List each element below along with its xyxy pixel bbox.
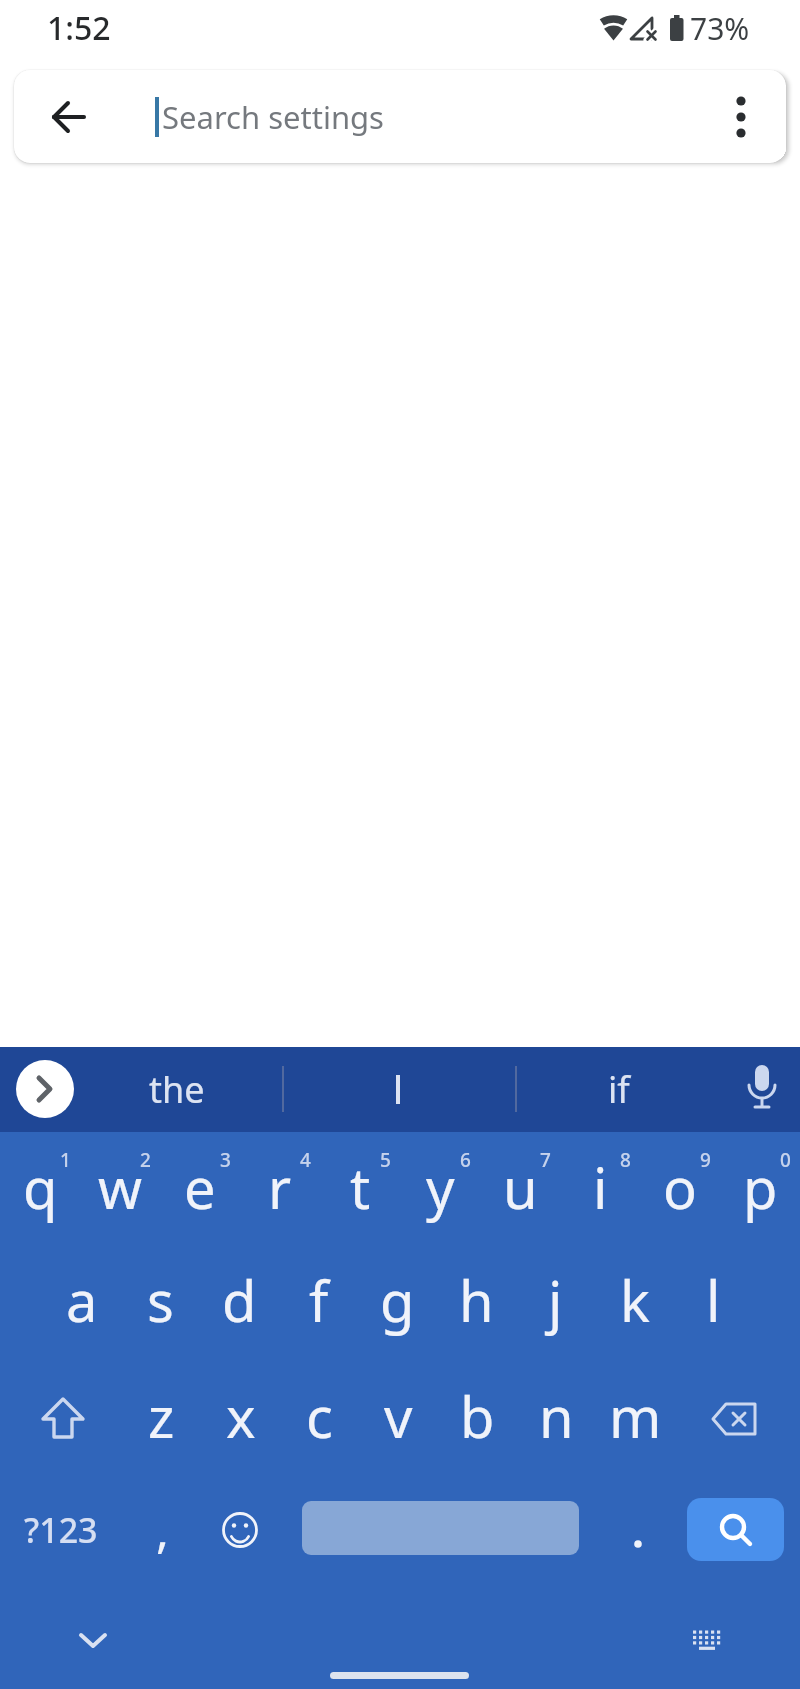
staticText: x [226, 1378, 256, 1454]
button[interactable]: k [595, 1242, 674, 1358]
button[interactable]: o [640, 1129, 720, 1245]
staticText: o [663, 1149, 697, 1225]
button[interactable] [715, 91, 767, 143]
staticText: 8 [620, 1147, 631, 1173]
button[interactable]: m [596, 1358, 675, 1474]
staticText: u [503, 1149, 538, 1225]
button[interactable] [302, 1501, 579, 1555]
button[interactable]: if [539, 1049, 699, 1129]
button[interactable]: q [0, 1129, 80, 1245]
staticText: 0 [780, 1147, 791, 1173]
button[interactable] [202, 1492, 278, 1568]
button[interactable]: g [358, 1242, 437, 1358]
staticText: v [384, 1378, 413, 1454]
staticText: 7 [540, 1147, 551, 1173]
button[interactable]: h [437, 1242, 516, 1358]
staticText: z [148, 1378, 175, 1454]
staticText: 1 [60, 1147, 71, 1173]
staticText: 9 [700, 1147, 711, 1173]
button[interactable]: l [674, 1242, 753, 1358]
button[interactable]: v [359, 1358, 438, 1474]
button[interactable]: i [560, 1129, 640, 1245]
staticText: c [306, 1378, 333, 1454]
staticText: p [743, 1149, 778, 1225]
staticText: q [23, 1149, 58, 1225]
button[interactable]: z [122, 1358, 201, 1474]
staticText: s [147, 1262, 174, 1338]
staticText: w [98, 1149, 143, 1225]
button[interactable]: , [127, 1479, 197, 1579]
staticText: h [459, 1262, 494, 1338]
staticText: 5 [380, 1147, 391, 1173]
staticText: 6 [460, 1147, 471, 1173]
staticText: m [609, 1378, 662, 1454]
staticText: ?123 [24, 1507, 98, 1553]
staticText: 1:52 [47, 6, 111, 50]
button[interactable]: d [200, 1242, 279, 1358]
staticText: t [350, 1149, 371, 1225]
staticText: e [184, 1149, 216, 1225]
button[interactable]: y [400, 1129, 480, 1245]
staticText: k [620, 1262, 650, 1338]
button[interactable]: t [320, 1129, 400, 1245]
button[interactable]: b [438, 1358, 517, 1474]
staticText: 3 [220, 1147, 231, 1173]
button[interactable]: j [516, 1242, 595, 1358]
button[interactable]: p [720, 1129, 800, 1245]
staticText: 73% [690, 8, 750, 49]
staticText: a [66, 1262, 98, 1338]
button[interactable]: f [279, 1242, 358, 1358]
button[interactable]: c [280, 1358, 359, 1474]
button[interactable]: e [160, 1129, 240, 1245]
staticText: Search settings [162, 96, 384, 138]
staticText: y [426, 1149, 455, 1225]
button[interactable]: x [201, 1358, 280, 1474]
button[interactable] [14, 70, 786, 163]
staticText: j [548, 1262, 563, 1338]
button[interactable] [58, 1606, 128, 1676]
staticText: d [222, 1262, 257, 1338]
button[interactable] [672, 1606, 742, 1676]
staticText: b [460, 1378, 495, 1454]
staticText: r [268, 1149, 292, 1225]
button[interactable]: r [240, 1129, 320, 1245]
button[interactable] [23, 1379, 103, 1459]
button[interactable] [695, 1379, 775, 1459]
button[interactable] [331, 1049, 465, 1129]
button[interactable] [687, 1498, 784, 1561]
staticText: 2 [140, 1147, 151, 1173]
staticText: n [539, 1378, 574, 1454]
staticText: 4 [300, 1147, 311, 1173]
staticText: g [380, 1262, 415, 1338]
button[interactable] [733, 1060, 791, 1118]
staticText: f [309, 1262, 329, 1338]
staticText: l [706, 1262, 721, 1338]
staticText: i [593, 1149, 608, 1225]
button[interactable]: the [97, 1049, 257, 1129]
button[interactable]: n [517, 1358, 596, 1474]
staticText: the [149, 1065, 205, 1114]
button[interactable] [608, 1499, 668, 1589]
staticText: , [156, 1497, 169, 1562]
button[interactable]: ?123 [6, 1480, 116, 1580]
button[interactable]: a [42, 1242, 121, 1358]
button[interactable]: s [121, 1242, 200, 1358]
button[interactable]: w [80, 1129, 160, 1245]
button[interactable] [41, 89, 97, 145]
button[interactable] [16, 1060, 74, 1118]
button[interactable]: u [480, 1129, 560, 1245]
staticText: if [608, 1065, 630, 1114]
